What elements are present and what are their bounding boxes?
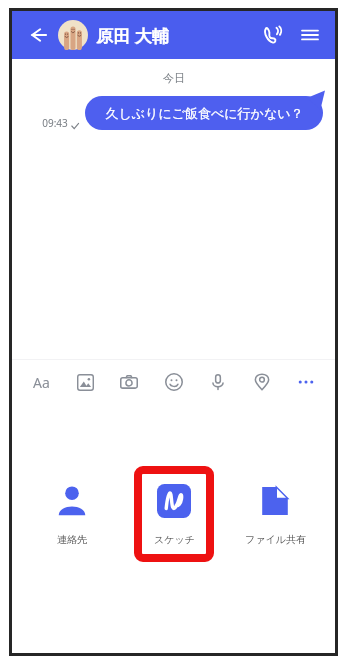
button[interactable]: 久しぶりにご飯食べに行かない？	[85, 96, 323, 130]
staticText: 09:43	[42, 116, 68, 130]
button[interactable]: Location	[247, 367, 277, 397]
button[interactable]: Text format	[26, 367, 56, 397]
button[interactable]: ファイル共有	[235, 466, 315, 562]
staticText: Aa	[33, 373, 50, 392]
button[interactable]: Call	[257, 20, 287, 50]
button[interactable]: Sticker	[159, 367, 189, 397]
staticText: 原田 大輔	[96, 24, 169, 47]
staticText: ファイル共有	[245, 533, 306, 546]
staticText: 連絡先	[57, 533, 87, 546]
button[interactable]: Camera	[114, 367, 144, 397]
button[interactable]: スケッチ	[134, 466, 214, 562]
button[interactable]: More	[291, 367, 321, 397]
button[interactable]: Back	[24, 21, 52, 49]
staticText: 今日	[163, 71, 185, 85]
button[interactable]: Voice message	[203, 367, 233, 397]
button[interactable]: Photo	[70, 367, 100, 397]
staticText: スケッチ	[154, 533, 195, 546]
button[interactable]: Menu	[297, 22, 323, 48]
staticText: 久しぶりにご飯食べに行かない？	[105, 105, 304, 121]
button[interactable]: 連絡先	[32, 466, 112, 562]
